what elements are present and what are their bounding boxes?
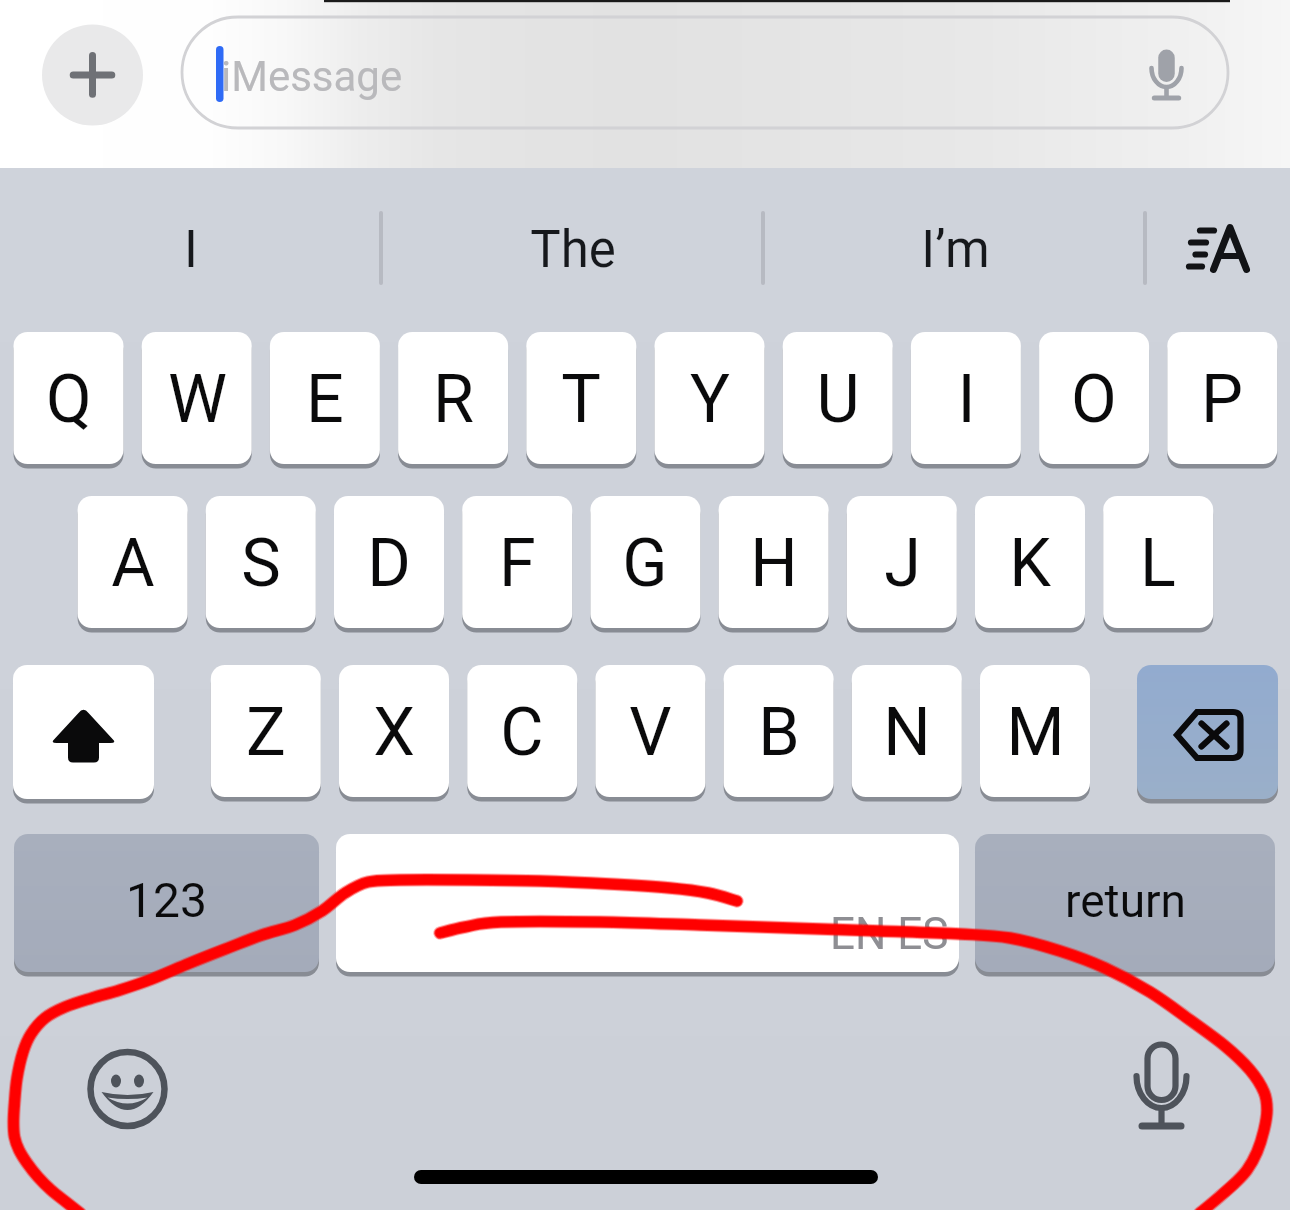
staticText: N — [883, 693, 931, 771]
button[interactable]: K — [975, 497, 1085, 629]
staticText: R — [433, 360, 474, 438]
button[interactable]: O — [1039, 333, 1149, 465]
button[interactable]: C — [467, 666, 577, 798]
button[interactable]: F — [462, 497, 572, 629]
button[interactable]: W — [142, 333, 252, 465]
staticText: I — [957, 360, 976, 438]
button[interactable]: L — [1103, 497, 1213, 629]
staticText: G — [622, 524, 668, 602]
staticText: iMessage — [221, 52, 403, 101]
button[interactable]: S — [206, 497, 316, 629]
button[interactable]: J — [847, 497, 957, 629]
staticText: K — [1009, 524, 1051, 602]
staticText: Y — [690, 360, 730, 438]
staticText: U — [816, 360, 860, 438]
button[interactable]: A — [78, 497, 188, 629]
button[interactable]: U — [783, 333, 893, 465]
staticText: S — [241, 524, 281, 602]
button[interactable]: Z — [211, 666, 321, 798]
button[interactable]: Dictation — [1120, 1038, 1205, 1134]
staticText: Q — [46, 360, 92, 438]
button[interactable]: The — [382, 202, 764, 298]
button[interactable]: I’m — [764, 202, 1146, 298]
button[interactable]: Space — [336, 834, 959, 972]
staticText: O — [1071, 360, 1117, 438]
button[interactable]: G — [590, 497, 700, 629]
button[interactable]: Y — [655, 333, 765, 465]
button[interactable]: Shift — [13, 665, 154, 799]
button[interactable]: V — [595, 666, 705, 798]
button[interactable]: N — [852, 666, 962, 798]
staticText: T — [561, 360, 601, 438]
button[interactable]: B — [724, 666, 834, 798]
staticText: C — [500, 693, 544, 771]
staticText: D — [367, 524, 411, 602]
button[interactable]: Delete — [1137, 665, 1278, 799]
staticText: 123 — [126, 872, 207, 928]
staticText: L — [1140, 524, 1176, 602]
staticText: B — [758, 693, 800, 771]
staticText: V — [629, 693, 672, 771]
button[interactable]: H — [719, 497, 829, 629]
staticText: I’m — [921, 220, 990, 280]
button[interactable]: M — [980, 666, 1090, 798]
staticText: X — [373, 693, 415, 771]
button[interactable]: R — [398, 333, 508, 465]
staticText: return — [1065, 874, 1186, 928]
button[interactable]: Emoji keyboard — [80, 1042, 176, 1138]
staticText: The — [530, 220, 616, 280]
staticText: A — [111, 524, 155, 602]
button[interactable]: X — [339, 666, 449, 798]
button[interactable]: Q — [14, 333, 124, 465]
staticText: W — [168, 360, 227, 438]
staticText: H — [750, 524, 798, 602]
staticText: F — [499, 524, 536, 602]
button[interactable]: P — [1167, 333, 1277, 465]
staticText: P — [1201, 360, 1243, 438]
button[interactable]: Dictate — [1130, 24, 1205, 122]
staticText: Z — [246, 693, 286, 771]
button[interactable]: return — [975, 832, 1275, 970]
button[interactable]: T — [526, 333, 636, 465]
button[interactable]: E — [270, 333, 380, 465]
button[interactable]: I — [0, 202, 382, 298]
staticText: E — [306, 360, 344, 438]
button[interactable]: Text formatting — [1146, 200, 1290, 296]
staticText: M — [1006, 693, 1065, 771]
button[interactable]: D — [334, 497, 444, 629]
button[interactable]: 123 — [14, 831, 319, 969]
staticText: J — [884, 524, 921, 602]
staticText: I — [184, 220, 198, 280]
button[interactable]: Add attachment — [42, 24, 142, 124]
button[interactable]: I — [911, 333, 1021, 465]
staticText: EN ES — [830, 908, 949, 954]
